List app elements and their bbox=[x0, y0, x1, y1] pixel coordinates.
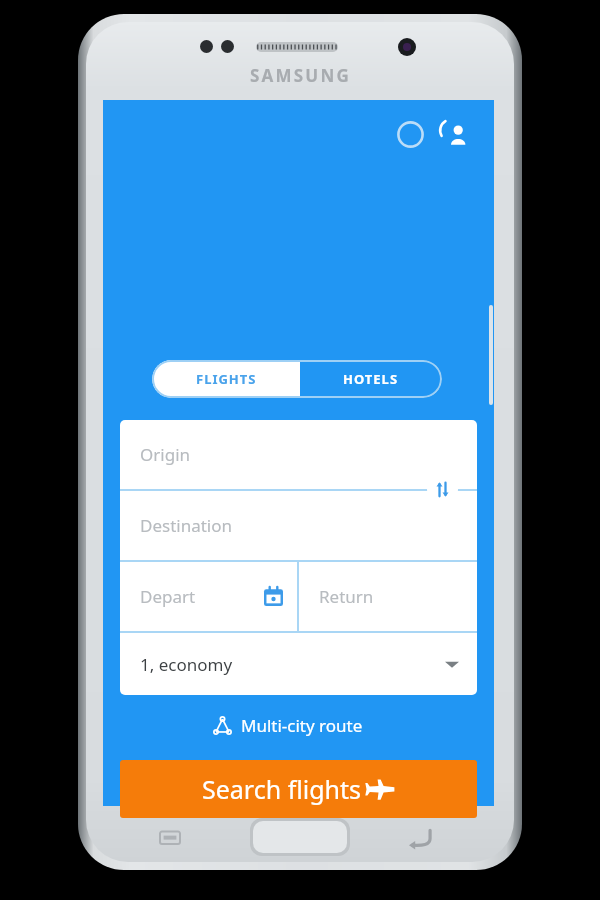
button[interactable]: FLIGHTS bbox=[152, 360, 300, 398]
staticText: Depart bbox=[140, 585, 196, 608]
button[interactable]: Destination bbox=[120, 491, 477, 560]
button[interactable]: Currency bbox=[391, 115, 429, 153]
button[interactable]: Origin bbox=[120, 420, 477, 489]
staticText: HOTELS bbox=[343, 370, 399, 388]
button[interactable]: Account bbox=[433, 113, 475, 155]
button[interactable]: Search flights bbox=[120, 760, 477, 818]
button[interactable]: Return bbox=[299, 562, 477, 631]
button[interactable]: 1, economy bbox=[120, 633, 477, 695]
staticText: Return bbox=[319, 585, 374, 608]
staticText: FLIGHTS bbox=[196, 370, 257, 388]
button[interactable]: Depart bbox=[120, 562, 297, 631]
staticText: Multi-city route bbox=[241, 714, 363, 737]
button[interactable]: Swap origin and destination bbox=[427, 474, 458, 505]
staticText: Origin bbox=[140, 443, 191, 466]
button[interactable]: HOTELS bbox=[300, 360, 442, 398]
staticText: Search flights bbox=[202, 772, 361, 806]
staticText: Destination bbox=[140, 514, 233, 537]
staticText: SAMSUNG bbox=[250, 64, 351, 87]
button[interactable]: Multi-city route bbox=[213, 708, 363, 742]
staticText: 1, economy bbox=[140, 653, 233, 676]
